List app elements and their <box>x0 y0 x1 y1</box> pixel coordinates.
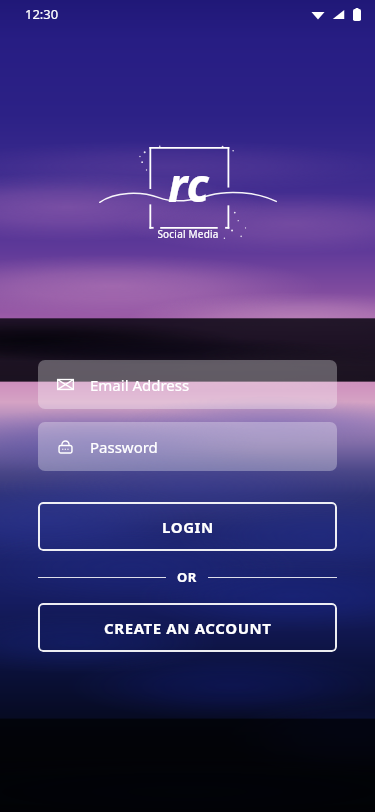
button[interactable]: LOGIN <box>38 502 337 551</box>
other: Password <box>57 438 74 455</box>
staticText: 12:30 <box>25 5 59 23</box>
other: Email <box>57 376 74 393</box>
staticText: CREATE AN ACCOUNT <box>104 618 272 638</box>
staticText: LOGIN <box>162 517 214 537</box>
button[interactable]: Email <box>38 360 337 409</box>
staticText: rc <box>168 153 209 216</box>
staticText: Password <box>90 437 158 457</box>
button[interactable]: Password <box>38 422 337 471</box>
staticText: Social Media <box>157 227 219 241</box>
staticText: Email Address <box>90 375 190 395</box>
button[interactable]: CREATE AN ACCOUNT <box>38 603 337 652</box>
staticText: OR <box>177 568 197 586</box>
